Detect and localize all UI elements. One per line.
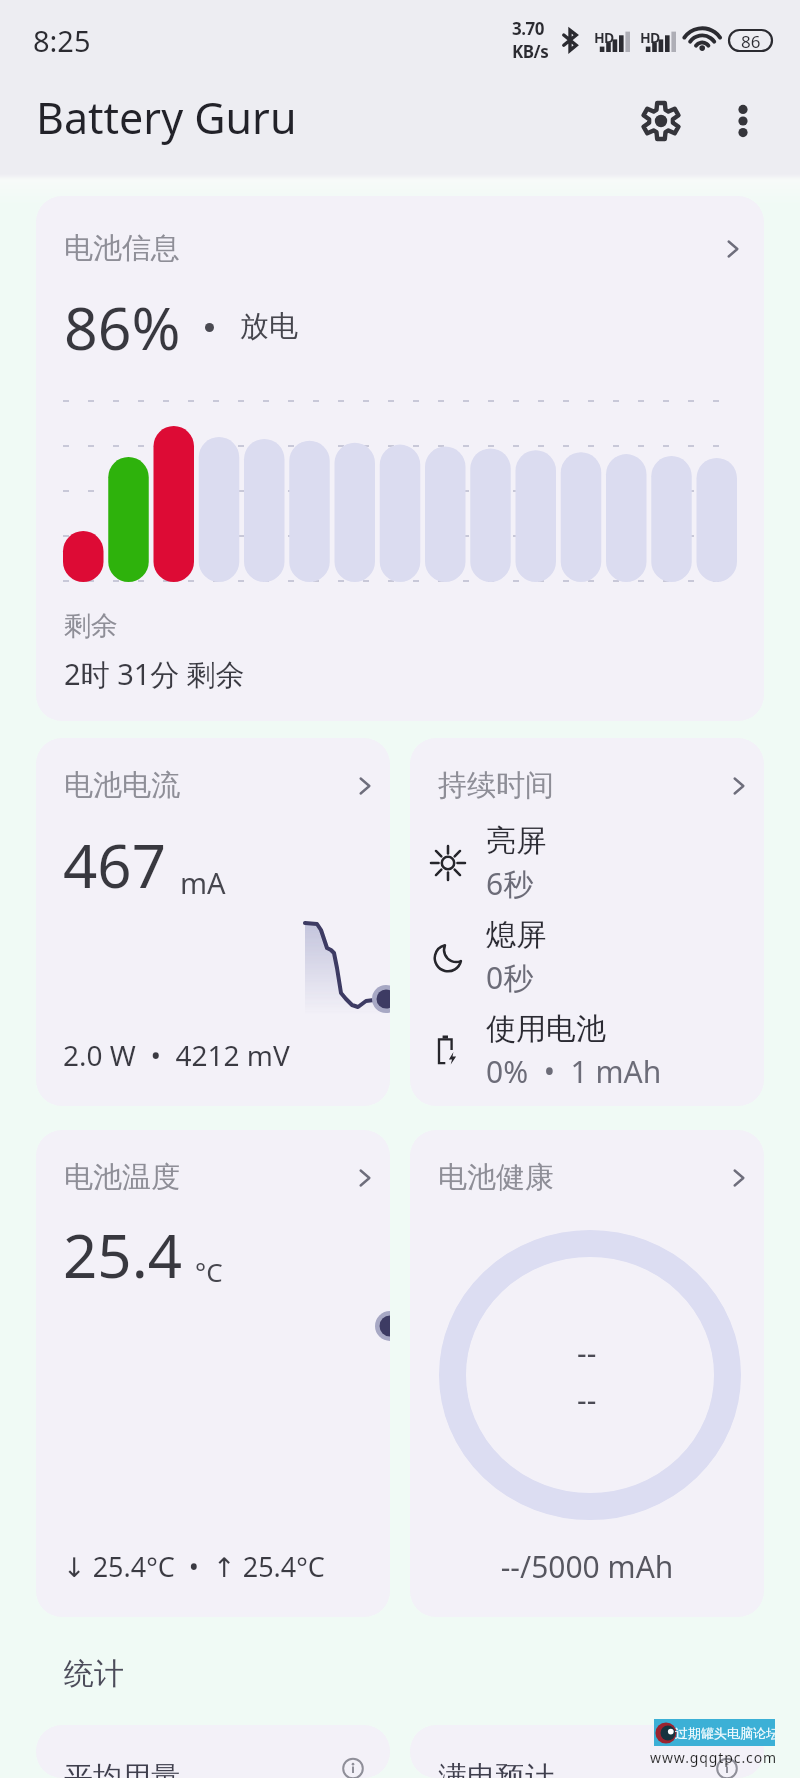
staticText: ↓ 25.4°C • ↑ 25.4°C (63, 1548, 325, 1585)
staticText: HD (640, 28, 660, 47)
staticText: 6秒 (486, 863, 534, 904)
staticText: -- (577, 1332, 597, 1373)
staticText: 电池信息 (64, 230, 180, 267)
staticText: 2时 31分 剩余 (64, 654, 245, 694)
staticText: 电池温度 (64, 1159, 180, 1196)
other: Open details (726, 1165, 752, 1191)
staticText: 平均用量 (64, 1759, 180, 1778)
staticText: 467 (63, 824, 166, 906)
staticText: 过期罐头电脑论坛 (675, 1725, 775, 1741)
other: Open details (352, 1165, 378, 1191)
staticText: 0% • 1 mAh (486, 1051, 662, 1092)
button[interactable]: 电池信息 (36, 196, 764, 721)
staticText: Battery Guru (36, 88, 297, 147)
staticText: 使用电池 (486, 1010, 606, 1048)
button[interactable]: Settings (630, 90, 692, 152)
staticText: 满电预计 (438, 1759, 554, 1778)
staticText: 电池电流 (64, 767, 180, 804)
staticText: 0秒 (486, 957, 534, 998)
staticText: 3.70 (512, 17, 544, 40)
staticText: 剩余 (64, 609, 118, 643)
staticText: mA (180, 863, 226, 902)
staticText: 亮屏 (486, 822, 546, 860)
staticText: HD (594, 28, 614, 47)
staticText: 统计 (64, 1655, 124, 1693)
button[interactable]: 电池电流 (36, 738, 390, 1106)
button[interactable]: More options (712, 90, 774, 152)
button[interactable]: 满电预计 (410, 1725, 764, 1778)
staticText: --/5000 mAh (410, 1546, 764, 1587)
button[interactable]: 电池健康 (410, 1130, 764, 1617)
staticText: -- (577, 1379, 597, 1420)
staticText: KB/s (512, 40, 549, 63)
staticText: °C (195, 1254, 223, 1289)
other: Open details (352, 773, 378, 799)
staticText: 8:25 (33, 21, 91, 60)
other: Open details (720, 236, 746, 262)
staticText: 86% (64, 287, 181, 367)
staticText: 25.4 (63, 1214, 183, 1296)
staticText: 持续时间 (438, 767, 554, 804)
staticText: 熄屏 (486, 916, 546, 954)
staticText: 86 (741, 30, 761, 50)
button[interactable]: 平均用量 (36, 1725, 390, 1778)
staticText: 电池健康 (438, 1159, 554, 1196)
staticText: www.gqgtpc.com (650, 1748, 778, 1767)
other: Open details (726, 773, 752, 799)
button[interactable]: 电池温度 (36, 1130, 390, 1617)
button[interactable]: 持续时间 (410, 738, 764, 1106)
staticText: 放电 (240, 308, 298, 345)
staticText: 2.0 W • 4212 mV (63, 1036, 290, 1074)
